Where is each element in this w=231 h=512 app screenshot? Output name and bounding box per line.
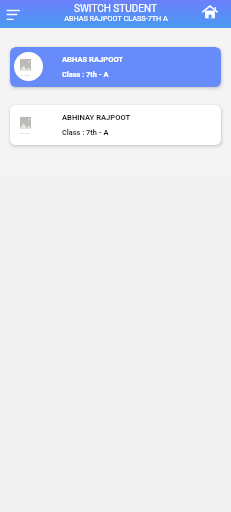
button[interactable]: NO IMAGE (10, 47, 221, 87)
staticText: NO IMAGE (20, 132, 31, 134)
button[interactable]: Open navigation menu (0, 1, 26, 27)
staticText: ABHINAY RAJPOOT (62, 113, 131, 122)
staticText: NO IMAGE (20, 74, 31, 76)
button[interactable]: NO IMAGE (10, 105, 221, 145)
button[interactable]: Home (205, 1, 231, 27)
staticText: ABHAS RAJPOOT CLASS-7TH A (64, 14, 168, 23)
staticText: SWITCH STUDENT (74, 3, 157, 15)
staticText: Class : 7th - A (62, 128, 109, 137)
staticText: Class : 7th - A (62, 70, 109, 79)
staticText: ABHAS RAJPOOT (62, 55, 124, 64)
